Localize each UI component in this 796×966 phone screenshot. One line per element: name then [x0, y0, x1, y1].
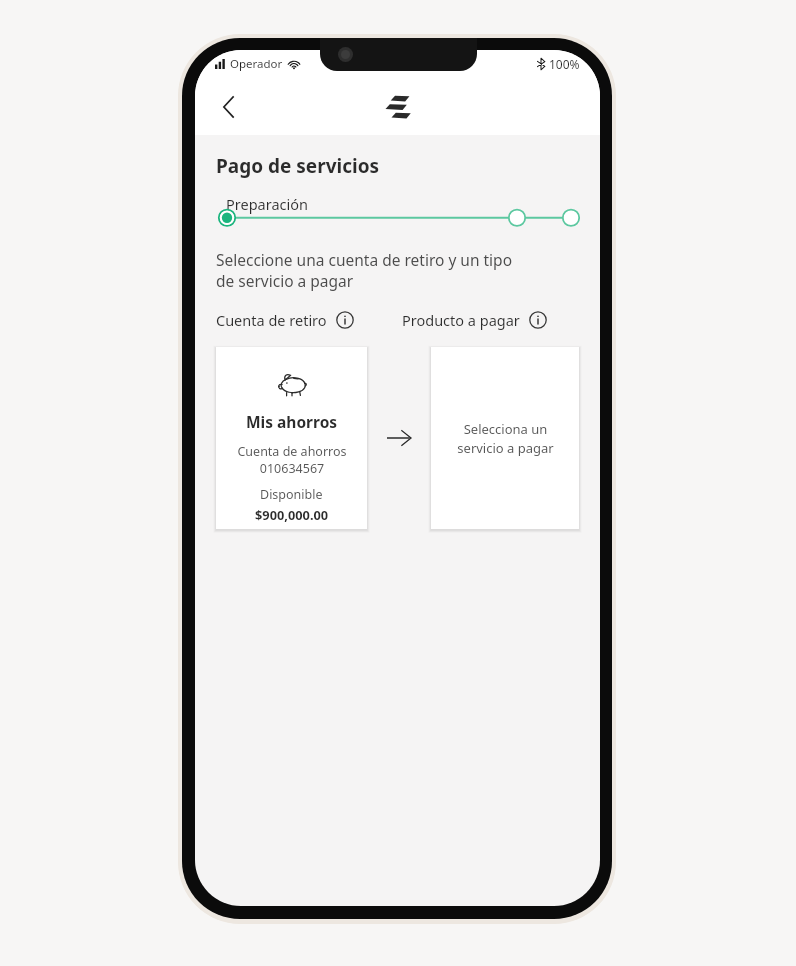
button[interactable]: Selecciona un servicio a pagar [431, 347, 579, 529]
button[interactable]: Info [527, 309, 549, 331]
button[interactable]: Back [211, 90, 245, 124]
staticText: Producto a pagar [402, 310, 520, 330]
staticText: Pago de servicios [216, 153, 380, 179]
staticText: 100% [549, 56, 580, 72]
staticText: Cuenta de ahorros 010634567 [237, 443, 347, 477]
staticText: Mis ahorros [246, 411, 338, 432]
button[interactable]: Mis ahorros [216, 347, 367, 529]
other: Logo [381, 92, 415, 122]
staticText: Seleccione una cuenta de retiro y un tip… [216, 249, 513, 292]
staticText: $900,000.00 [255, 506, 329, 523]
staticText: Preparación [226, 194, 308, 214]
staticText: Disponible [260, 486, 323, 503]
staticText: Cuenta de retiro [216, 310, 327, 330]
staticText: Operador [230, 56, 283, 72]
button[interactable]: Info [334, 309, 356, 331]
staticText: Selecciona un servicio a pagar [457, 420, 554, 457]
